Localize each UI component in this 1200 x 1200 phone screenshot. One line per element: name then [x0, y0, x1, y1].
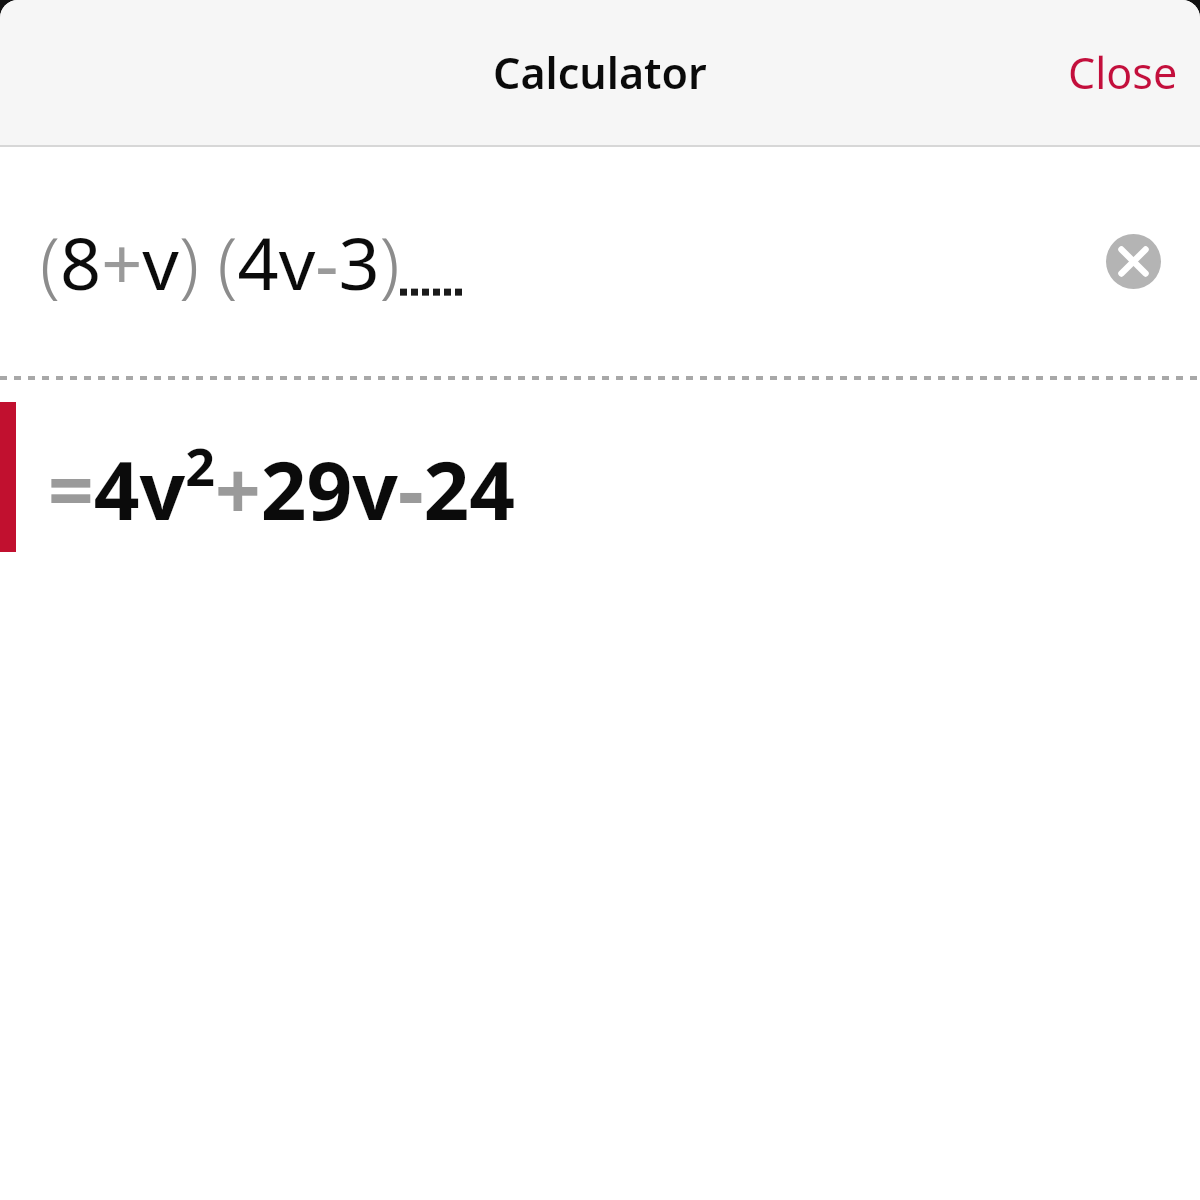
- button[interactable]: (8+v) (4v-3): [0, 147, 1200, 376]
- button[interactable]: =4v2+29v-24: [0, 380, 1200, 580]
- staticText: Close: [1068, 43, 1178, 102]
- button[interactable]: Close: [1046, 29, 1200, 116]
- staticText: =4v2+29v-24: [48, 430, 516, 543]
- staticText: Calculator: [493, 43, 707, 102]
- button[interactable]: Clear: [1106, 234, 1161, 289]
- staticText: (8+v) (4v-3): [40, 213, 400, 311]
